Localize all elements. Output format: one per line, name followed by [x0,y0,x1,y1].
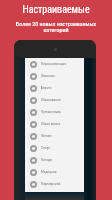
button[interactable]: Погода [25,154,84,166]
staticText: Бизнес [41,86,52,90]
button[interactable]: Персонализация [25,58,84,70]
button[interactable]: Путешествия [25,106,84,118]
button[interactable]: Спорт [25,142,84,154]
staticText: Образ жизни [41,122,61,126]
staticText: Медицина [41,170,57,174]
button[interactable]: Образ жизни [25,118,84,130]
staticText: Спорт [41,146,50,150]
button[interactable]: Образование [25,94,84,106]
button[interactable]: Партнерский [25,178,84,190]
button[interactable]: Бизнес [25,82,84,94]
staticText: Образование [41,98,61,102]
staticText: Персонализация [41,62,67,66]
staticText: Путешествия [41,110,61,114]
staticText: Финансы [41,74,55,78]
staticText: Фитнес [41,134,52,138]
staticText: Настраиваемые [22,4,90,16]
button[interactable]: Фитнес [25,130,84,142]
button[interactable]: Финансы [25,70,84,82]
staticText: Погода [41,158,52,162]
staticText: Партнерский [41,182,61,186]
button[interactable]: Медицина [25,166,84,178]
staticText: Более 20 новых настраиваемых категорий [15,20,97,34]
